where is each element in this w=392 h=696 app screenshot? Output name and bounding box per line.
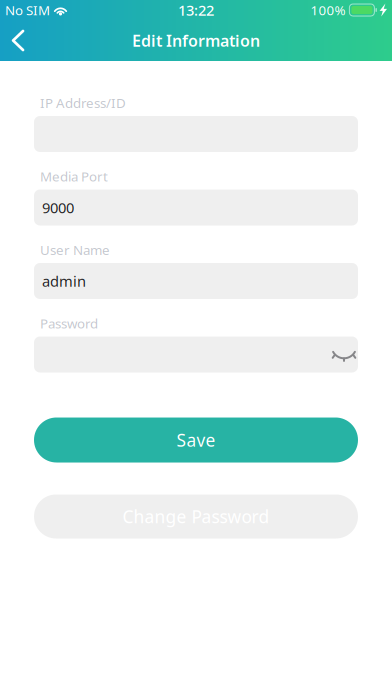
button[interactable]: Save: [34, 417, 358, 462]
button[interactable]: Media Port: [34, 189, 358, 225]
button[interactable]: Back: [0, 20, 36, 61]
staticText: admin: [42, 271, 86, 291]
staticText: Change Password: [122, 505, 269, 528]
button[interactable]: User Name: [34, 263, 358, 299]
staticText: IP Address/ID: [40, 94, 126, 112]
button[interactable]: Password: [34, 336, 358, 372]
staticText: Edit Information: [132, 30, 260, 51]
staticText: 100%: [310, 1, 345, 19]
staticText: Media Port: [40, 167, 108, 185]
button[interactable]: Show password: [326, 336, 356, 372]
staticText: User Name: [40, 241, 110, 259]
staticText: Save: [176, 428, 215, 451]
button[interactable]: Change Password: [34, 494, 358, 538]
staticText: 13:22: [178, 0, 214, 20]
staticText: Password: [40, 314, 98, 332]
staticText: 9000: [42, 198, 74, 217]
staticText: No SIM: [5, 1, 50, 19]
